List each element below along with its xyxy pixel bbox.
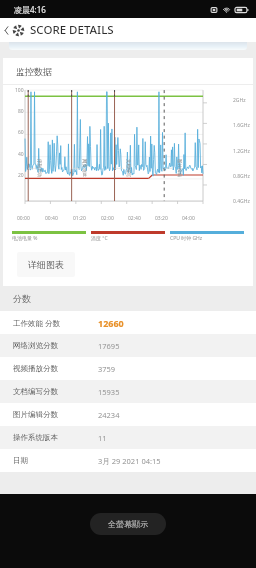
staticText: 全螢幕顯示 — [108, 519, 148, 529]
button[interactable]: 视频播放分数 — [0, 357, 256, 380]
staticText: 40 — [18, 151, 24, 158]
staticText: 0.4GHz — [233, 198, 250, 205]
staticText: 日期 — [13, 456, 98, 465]
button[interactable]: 详细图表 — [17, 252, 75, 277]
staticText: 11 — [98, 433, 107, 443]
staticText: 网络浏览分数 — [13, 341, 98, 350]
staticText: 12660 — [98, 317, 124, 329]
staticText: 00:40 — [45, 215, 58, 222]
button[interactable]: 文档编写分数 — [0, 380, 256, 403]
staticText: 15935 — [98, 387, 120, 397]
staticText: 3759 — [98, 364, 116, 374]
staticText: 03:20 — [155, 215, 168, 222]
staticText: 02:00 — [101, 215, 114, 222]
staticText: 序列启动 — [36, 159, 42, 177]
staticText: 24234 — [98, 410, 120, 420]
staticText: 工作效能 分数 — [13, 318, 98, 328]
staticText: 凌晨4:16 — [14, 4, 46, 15]
staticText: 监控数据 — [16, 66, 52, 77]
staticText: 详细图表 — [28, 259, 64, 270]
staticText: 01:20 — [73, 215, 86, 222]
staticText: 60 — [18, 129, 24, 136]
staticText: 00:00 — [17, 215, 30, 222]
button[interactable]: 图片编辑分数 — [0, 403, 256, 426]
staticText: 3月 29 2021 04:15 — [98, 456, 161, 466]
button[interactable]: 工作效能 分数 — [0, 311, 256, 334]
staticText: 电池电量 % — [12, 235, 38, 242]
staticText: 温度 °C — [91, 235, 108, 242]
button[interactable]: 日期 — [0, 449, 256, 472]
staticText: 图片编辑分数 — [13, 410, 98, 419]
staticText: 80 — [18, 108, 24, 115]
staticText: 1.2GHz — [233, 148, 250, 155]
staticText: 分数 — [13, 293, 31, 304]
staticText: 操作系统版本 — [13, 433, 98, 442]
staticText: 04:00 — [182, 215, 195, 222]
button[interactable]: 全螢幕顯示 — [90, 513, 166, 535]
staticText: 100 — [15, 87, 24, 94]
staticText: 02:40 — [128, 215, 141, 222]
button[interactable]: Back — [0, 18, 12, 42]
staticText: 17695 — [98, 341, 120, 351]
staticText: 20 — [18, 172, 24, 179]
staticText: 图片编辑 — [176, 159, 182, 177]
staticText: 网页浏览 — [81, 159, 87, 177]
staticText: 2GHz — [233, 97, 246, 104]
button[interactable]: 网络浏览分数 — [0, 334, 256, 357]
staticText: SCORE DETAILS — [30, 22, 114, 38]
staticText: 1.6GHz — [233, 122, 250, 129]
staticText: 视频播放分数 — [13, 364, 98, 373]
staticText: 文档编写分数 — [13, 387, 98, 396]
button[interactable]: 操作系统版本 — [0, 426, 256, 449]
staticText: 文档编写 — [125, 159, 131, 177]
staticText: CPU 时钟 GHz — [170, 235, 203, 242]
staticText: 0.8GHz — [233, 173, 250, 180]
